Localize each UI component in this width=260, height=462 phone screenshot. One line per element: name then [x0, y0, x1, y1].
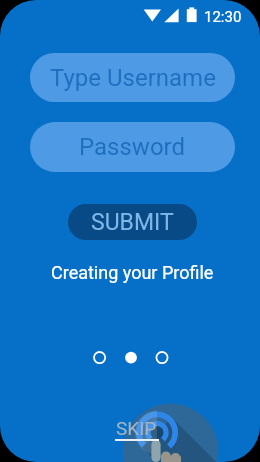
staticText: SKIP — [116, 417, 157, 439]
other: Status bar — [0, 0, 260, 462]
staticText: Password — [79, 133, 186, 161]
staticText: Creating your Profile — [51, 262, 214, 283]
button[interactable]: SUBMIT — [68, 204, 197, 240]
staticText: Type Username — [50, 64, 216, 92]
staticText: 12:30 — [204, 8, 242, 26]
staticText: SUBMIT — [91, 209, 174, 236]
button[interactable]: Password — [30, 122, 235, 172]
button[interactable]: SKIP — [112, 415, 161, 441]
button[interactable]: Type Username — [30, 53, 235, 102]
